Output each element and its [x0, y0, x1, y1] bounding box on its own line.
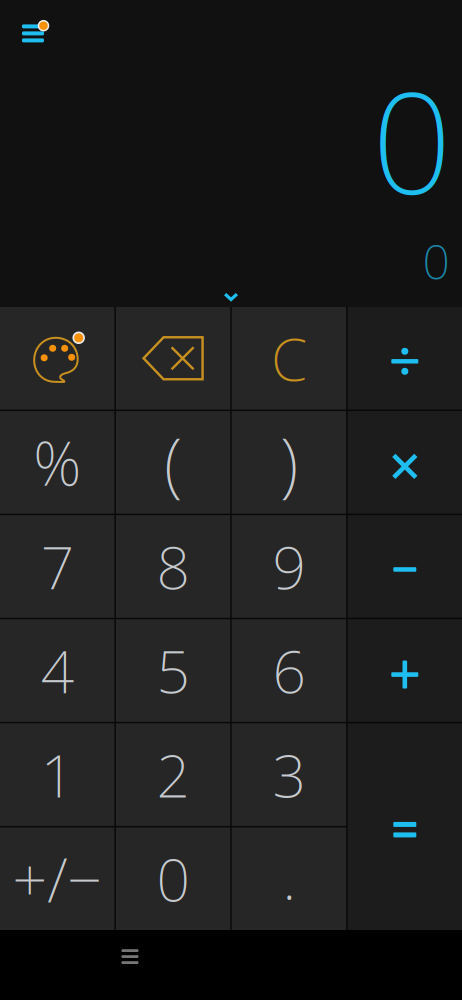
staticText: ( [164, 416, 182, 508]
button[interactable]: 1 [0, 723, 114, 826]
button[interactable]: % [0, 411, 114, 514]
button[interactable]: 9 [232, 515, 346, 618]
staticText: 1 [41, 736, 74, 814]
staticText: 9 [272, 527, 305, 605]
staticText: 0 [372, 47, 452, 233]
button[interactable]: +/− [0, 827, 114, 930]
staticText: 2 [157, 736, 190, 814]
button[interactable]: ( [116, 411, 230, 514]
staticText: 8 [157, 527, 190, 605]
button[interactable]: Divide [348, 307, 462, 410]
button[interactable]: . [232, 827, 346, 930]
button[interactable]: ) [232, 411, 346, 514]
button[interactable]: Recent apps [107, 937, 153, 977]
staticText: 7 [41, 527, 74, 605]
button[interactable]: Add [348, 619, 462, 722]
button[interactable]: 6 [232, 619, 346, 722]
button[interactable]: 3 [232, 723, 346, 826]
button[interactable]: Collapse [211, 285, 251, 309]
button[interactable]: Subtract [348, 515, 462, 618]
button[interactable]: Equals [348, 723, 462, 930]
button[interactable]: 5 [116, 619, 230, 722]
button[interactable]: Multiply [348, 411, 462, 514]
button[interactable]: Menu [11, 10, 63, 56]
button[interactable]: 7 [0, 515, 114, 618]
staticText: . [282, 838, 295, 916]
staticText: ) [280, 416, 298, 508]
staticText: 3 [272, 736, 305, 814]
staticText: 0 [157, 840, 190, 918]
button[interactable]: 4 [0, 619, 114, 722]
staticText: 6 [272, 632, 305, 709]
button[interactable]: Delete [116, 307, 230, 410]
button[interactable]: C [232, 307, 346, 410]
staticText: 4 [41, 632, 74, 709]
button[interactable]: Themes [0, 307, 114, 410]
staticText: 0 [422, 229, 449, 293]
button[interactable]: 8 [116, 515, 230, 618]
staticText: C [271, 319, 307, 397]
button[interactable]: 0 [116, 827, 230, 930]
staticText: 5 [157, 632, 190, 709]
staticText: +/− [12, 838, 102, 919]
button[interactable]: 2 [116, 723, 230, 826]
staticText: % [33, 422, 81, 502]
